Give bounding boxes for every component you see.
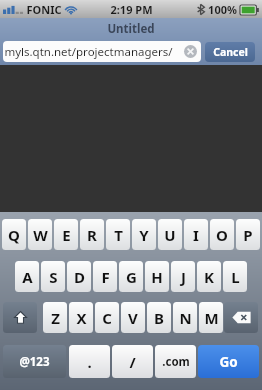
button[interactable]: B [147,302,171,333]
button[interactable]: A [15,261,39,292]
staticText: O [216,225,228,245]
button[interactable]: @123 [3,345,66,378]
staticText: M [204,308,219,328]
staticText: Go [219,353,238,371]
staticText: K [204,267,214,287]
staticText: Z [51,308,60,328]
staticText: D [74,267,85,287]
staticText: V [128,308,138,328]
staticText: E [62,225,71,245]
button[interactable]: Z [43,302,67,333]
button[interactable]: Clear text [184,45,197,58]
staticText: R [87,225,97,245]
button[interactable]: .com [155,345,196,378]
staticText: I [193,225,199,245]
button[interactable]: E [54,219,78,250]
button[interactable]: U [158,219,182,250]
staticText: .com [162,354,190,370]
button[interactable]: H [145,261,169,292]
staticText: T [114,225,123,245]
button[interactable]: L [223,261,247,292]
staticText: @123 [19,354,50,370]
staticText: U [164,225,176,245]
staticText: B [154,308,164,328]
staticText: Cancel [213,45,248,59]
button[interactable]: C [95,302,119,333]
button[interactable]: . [69,345,110,378]
staticText: Untitled [107,21,155,37]
staticText: 2:19 PM [110,2,153,17]
button[interactable]: R [80,219,104,250]
staticText: FONIC [26,2,62,17]
button[interactable]: X [69,302,93,333]
staticText: C [102,308,112,328]
staticText: L [231,267,240,287]
button[interactable]: Go [198,345,259,378]
staticText: Q [8,225,20,245]
button[interactable]: I [184,219,208,250]
staticText: 100% [208,2,237,17]
staticText: N [179,308,192,328]
button[interactable]: Cancel [205,42,255,62]
button[interactable]: S [41,261,65,292]
staticText: / [129,352,136,372]
button[interactable]: Y [132,219,156,250]
staticText: P [243,225,253,245]
button[interactable]: J [171,261,195,292]
button[interactable]: K [197,261,221,292]
staticText: . [87,352,92,372]
button[interactable]: Shift [3,302,37,333]
button[interactable]: O [210,219,234,250]
staticText: H [151,267,163,287]
staticText: G [126,267,137,287]
button[interactable]: T [106,219,130,250]
button[interactable]: / [112,345,153,378]
button[interactable]: D [67,261,91,292]
button[interactable]: P [236,219,260,250]
button[interactable]: N [173,302,197,333]
button[interactable]: V [121,302,145,333]
button[interactable]: myls.qtn.net/projectmanagers/ [3,41,201,62]
button[interactable]: G [119,261,143,292]
staticText: X [76,308,87,328]
staticText: Y [139,225,149,245]
button[interactable]: Q [2,219,26,250]
button[interactable]: W [28,219,52,250]
button[interactable]: F [93,261,117,292]
staticText: J [181,267,186,287]
button[interactable]: M [199,302,223,333]
staticText: S [49,267,58,287]
staticText: W [33,225,48,245]
staticText: A [22,267,33,287]
staticText: F [101,267,110,287]
staticText: myls.qtn.net/projectmanagers/ [4,44,173,60]
button[interactable]: Backspace [224,302,258,333]
